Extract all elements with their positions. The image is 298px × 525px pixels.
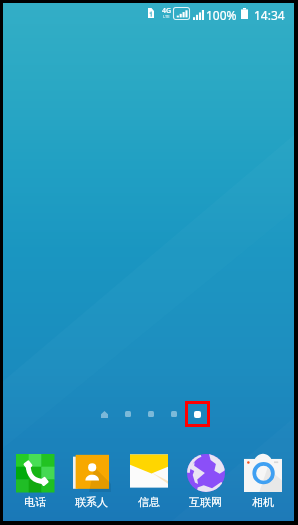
button[interactable]: 电话 [6,454,63,509]
button[interactable]: Page 2 [116,401,139,427]
staticText: 14:34 [254,7,285,23]
button[interactable]: 信息 [120,454,177,509]
button[interactable]: 互联网 [177,454,234,509]
button[interactable]: Current page [185,401,210,427]
staticText: 电话 [24,495,46,509]
staticText: 100% [206,7,237,23]
staticText: 信息 [138,495,160,509]
staticText: 互联网 [189,495,222,509]
staticText: LTE [163,14,170,19]
button[interactable]: 联系人 [63,454,120,509]
staticText: 4G [162,6,172,16]
staticText: 联系人 [75,495,108,509]
button[interactable]: Page 4 [162,401,185,427]
button[interactable]: 相机 [234,454,291,509]
button[interactable]: Home screen page [93,401,116,427]
button[interactable]: Page 3 [139,401,162,427]
staticText: 相机 [252,495,274,509]
